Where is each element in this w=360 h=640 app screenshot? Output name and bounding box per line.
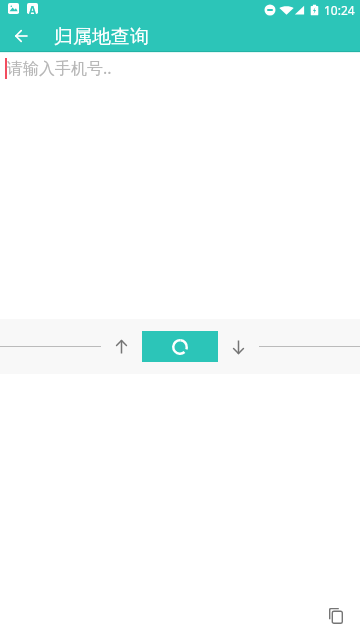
- button[interactable]: Refresh: [142, 331, 218, 362]
- button[interactable]: Scroll up: [101, 319, 142, 374]
- staticText: 10:24: [324, 2, 355, 18]
- staticText: 请输入手机号..: [7, 57, 112, 79]
- button[interactable]: Copy: [322, 602, 350, 630]
- button[interactable]: Scroll down: [218, 319, 259, 374]
- staticText: A: [29, 3, 36, 14]
- button[interactable]: Back: [8, 22, 35, 49]
- staticText: 归属地查询: [54, 25, 149, 49]
